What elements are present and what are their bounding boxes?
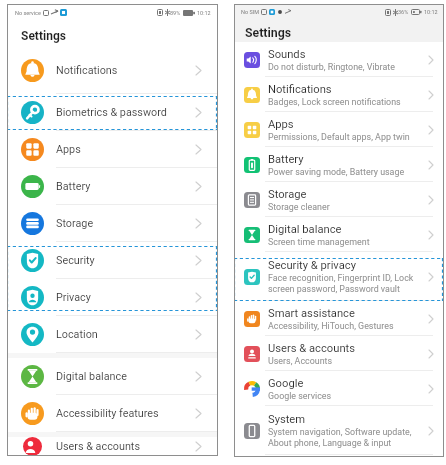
button[interactable]: Apps — [7, 131, 218, 168]
button[interactable]: System — [234, 406, 444, 455]
button[interactable]: Accessibility features — [7, 395, 218, 432]
button[interactable]: Battery — [234, 147, 444, 182]
staticText: 10:12 — [424, 9, 438, 15]
staticText: Do not disturb, Ringtone, Vibrate — [268, 62, 395, 72]
staticText: Location — [56, 328, 98, 341]
staticText: Battery — [268, 153, 304, 166]
staticText: Apps — [56, 143, 81, 156]
staticText: screen password, Password vault — [268, 284, 400, 294]
staticText: Google — [268, 377, 304, 390]
staticText: Smart assistance — [268, 307, 355, 320]
staticText: Accessibility, HiTouch, Gestures — [268, 321, 394, 331]
button[interactable]: Security & privacy — [234, 252, 444, 301]
staticText: Screen time management — [268, 237, 370, 247]
staticText: Users & accounts — [56, 440, 140, 453]
staticText: Users, Accounts — [268, 356, 333, 366]
button[interactable]: Digital balance — [7, 358, 218, 395]
button[interactable]: Biometrics & password — [7, 94, 218, 131]
staticText: Privacy — [56, 291, 91, 304]
staticText: Accessibility features — [56, 407, 159, 420]
staticText: 10:12 — [197, 10, 211, 16]
staticText: Security & privacy — [268, 259, 356, 272]
button[interactable]: Sounds — [234, 42, 444, 77]
button[interactable]: Digital balance — [234, 217, 444, 252]
staticText: Apps — [268, 118, 294, 131]
staticText: Digital balance — [56, 370, 127, 383]
staticText: Users & accounts — [268, 342, 355, 355]
button[interactable]: Notifications — [7, 47, 218, 94]
staticText: 89% — [170, 10, 181, 16]
staticText: Badges, Lock screen notifications — [268, 97, 401, 107]
staticText: Storage — [56, 217, 94, 230]
staticText: About phone, Language & input — [268, 438, 392, 448]
staticText: Permissions, Default apps, App twin — [268, 132, 410, 142]
button[interactable]: Storage — [7, 205, 218, 242]
staticText: Notifications — [268, 83, 332, 96]
staticText: Biometrics & password — [56, 106, 167, 119]
button[interactable]: Battery — [7, 168, 218, 205]
staticText: System — [268, 413, 306, 426]
staticText: 36% — [398, 9, 409, 15]
staticText: Security — [56, 254, 95, 267]
staticText: Battery — [56, 180, 91, 193]
staticText: No service — [15, 10, 41, 16]
button[interactable]: Users & accounts — [7, 437, 218, 456]
staticText: Settings — [245, 26, 292, 40]
staticText: Digital balance — [268, 223, 342, 236]
staticText: Notifications — [56, 64, 118, 77]
staticText: No SIM — [241, 9, 259, 15]
button[interactable]: Google — [234, 371, 444, 406]
button[interactable]: Storage — [234, 182, 444, 217]
button[interactable]: Smart assistance — [234, 301, 444, 336]
staticText: Power saving mode, Battery usage — [268, 167, 405, 177]
button[interactable]: Users & accounts — [234, 336, 444, 371]
button[interactable]: Apps — [234, 112, 444, 147]
staticText: System navigation, Software update, — [268, 427, 412, 437]
button[interactable]: Security — [7, 242, 218, 279]
staticText: Storage cleaner — [268, 202, 330, 212]
button[interactable]: Privacy — [7, 279, 218, 316]
staticText: Face recognition, Fingerprint ID, Lock — [268, 273, 414, 283]
staticText: Google services — [268, 391, 332, 401]
button[interactable]: Location — [7, 316, 218, 353]
staticText: Storage — [268, 188, 307, 201]
staticText: Sounds — [268, 48, 306, 61]
button[interactable]: Notifications — [234, 77, 444, 112]
staticText: Settings — [21, 29, 66, 43]
